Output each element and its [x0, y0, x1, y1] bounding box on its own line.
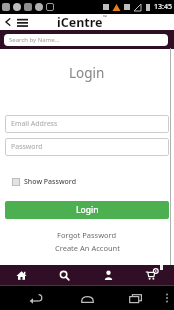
- staticText: Password: [11, 142, 43, 152]
- staticText: iCentre: [57, 14, 103, 30]
- button[interactable]: [130, 265, 174, 285]
- button[interactable]: Login: [5, 201, 169, 219]
- button[interactable]: [29, 294, 43, 303]
- staticText: Login: [76, 204, 99, 216]
- button[interactable]: [81, 294, 94, 303]
- button[interactable]: [164, 293, 170, 304]
- button[interactable]: [4, 18, 12, 26]
- button[interactable]: Forgot Password: [57, 230, 117, 240]
- button[interactable]: [86, 265, 130, 285]
- staticText: Email Address: [11, 119, 58, 129]
- staticText: Search by Name...: [9, 36, 60, 44]
- button[interactable]: [43, 265, 86, 285]
- button[interactable]: [0, 265, 43, 285]
- button[interactable]: Create An Account: [55, 243, 120, 253]
- staticText: Show Password: [24, 177, 77, 187]
- button[interactable]: [17, 17, 28, 28]
- button[interactable]: Search by Name...: [4, 34, 168, 46]
- staticText: ™: [103, 14, 107, 21]
- staticText: Login: [69, 64, 105, 82]
- button[interactable]: Password: [5, 138, 169, 156]
- staticText: 13:45: [154, 2, 172, 12]
- button[interactable]: Show Password: [12, 177, 174, 187]
- button[interactable]: Email Address: [5, 115, 169, 133]
- button[interactable]: [129, 294, 142, 303]
